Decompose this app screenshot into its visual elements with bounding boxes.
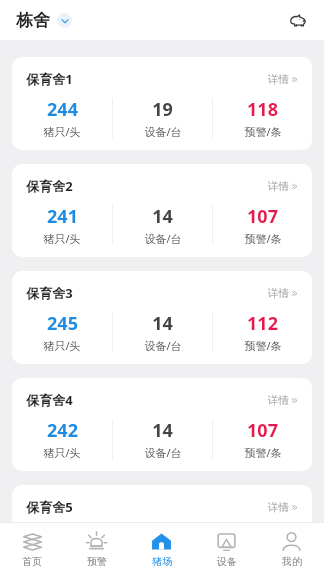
button[interactable]: 保育舍1 bbox=[12, 57, 312, 150]
staticText: 设备 bbox=[217, 555, 237, 568]
staticText: 242 bbox=[47, 418, 78, 443]
staticText: 设备/台 bbox=[144, 124, 182, 139]
button[interactable]: 首页 bbox=[0, 523, 64, 576]
staticText: 猪只/头 bbox=[43, 338, 81, 353]
staticText: 预警/条 bbox=[244, 231, 282, 246]
button[interactable]: 猪场 bbox=[129, 523, 194, 576]
staticText: 107 bbox=[247, 418, 278, 443]
staticText: 预警/条 bbox=[244, 445, 282, 460]
button[interactable]: 详情 bbox=[266, 392, 300, 409]
button[interactable]: Pig bbox=[284, 6, 312, 34]
button[interactable]: 详情 bbox=[266, 499, 300, 516]
staticText: 244 bbox=[47, 97, 78, 122]
button[interactable]: 详情 bbox=[266, 71, 300, 88]
staticText: 118 bbox=[247, 97, 278, 122]
button[interactable]: 我的 bbox=[259, 523, 324, 576]
staticText: 详情 bbox=[268, 394, 289, 407]
staticText: 保育舍1 bbox=[26, 70, 73, 88]
button[interactable]: 保育舍5 bbox=[12, 485, 312, 522]
staticText: 设备/台 bbox=[144, 445, 182, 460]
staticText: 详情 bbox=[268, 287, 289, 300]
button[interactable]: 保育舍2 bbox=[12, 164, 312, 257]
staticText: 107 bbox=[247, 204, 278, 229]
staticText: 猪只/头 bbox=[43, 124, 81, 139]
staticText: 14 bbox=[152, 418, 173, 443]
staticText: 详情 bbox=[268, 501, 289, 514]
staticText: 猪场 bbox=[152, 555, 172, 568]
staticText: 保育舍3 bbox=[26, 284, 73, 302]
staticText: 猪只/头 bbox=[43, 231, 81, 246]
staticText: 我的 bbox=[282, 555, 302, 568]
staticText: 241 bbox=[47, 204, 78, 229]
staticText: 预警 bbox=[87, 555, 107, 568]
button[interactable]: 栋舍 bbox=[14, 8, 74, 33]
staticText: 保育舍5 bbox=[26, 498, 73, 516]
staticText: 首页 bbox=[22, 555, 42, 568]
button[interactable]: 详情 bbox=[266, 285, 300, 302]
staticText: 保育舍2 bbox=[26, 177, 73, 195]
staticText: 19 bbox=[152, 97, 173, 122]
staticText: 设备/台 bbox=[144, 231, 182, 246]
staticText: 猪只/头 bbox=[43, 445, 81, 460]
staticText: 详情 bbox=[268, 180, 289, 193]
staticText: 14 bbox=[152, 204, 173, 229]
staticText: 预警/条 bbox=[244, 338, 282, 353]
staticText: 设备/台 bbox=[144, 338, 182, 353]
staticText: 245 bbox=[47, 311, 78, 336]
staticText: 详情 bbox=[268, 73, 289, 86]
staticText: 保育舍4 bbox=[26, 391, 73, 409]
button[interactable]: 预警 bbox=[64, 523, 129, 576]
staticText: 栋舍 bbox=[16, 10, 50, 31]
staticText: 112 bbox=[247, 311, 278, 336]
staticText: 14 bbox=[152, 311, 173, 336]
button[interactable]: 详情 bbox=[266, 178, 300, 195]
button[interactable]: 保育舍4 bbox=[12, 378, 312, 471]
staticText: 预警/条 bbox=[244, 124, 282, 139]
button[interactable]: 设备 bbox=[194, 523, 259, 576]
button[interactable]: 保育舍3 bbox=[12, 271, 312, 364]
